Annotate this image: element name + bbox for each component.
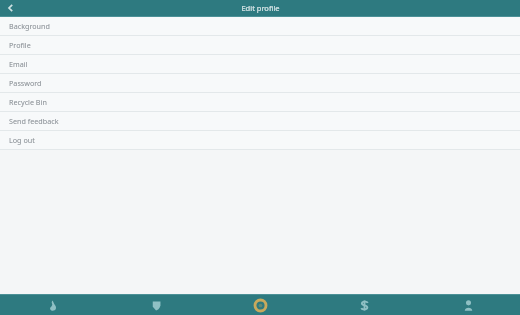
button[interactable]: Password	[0, 74, 520, 93]
staticText: Background	[9, 21, 50, 31]
button[interactable]: Log out	[0, 131, 520, 150]
staticText: Profile	[9, 40, 31, 50]
button[interactable]: Background	[0, 17, 520, 36]
button[interactable]: Send feedback	[0, 112, 520, 131]
button[interactable]: Back	[0, 0, 22, 16]
staticText: Recycle Bin	[9, 97, 47, 107]
staticText: Send feedback	[9, 116, 59, 126]
staticText: Edit profile	[241, 3, 280, 13]
button[interactable]: Profile	[416, 295, 520, 315]
staticText: Log out	[9, 135, 35, 145]
button[interactable]: Payments	[312, 295, 416, 315]
staticText: Password	[9, 78, 42, 88]
button[interactable]: Email	[0, 55, 520, 74]
staticText: Email	[9, 59, 28, 69]
button[interactable]: Profile	[0, 36, 520, 55]
button[interactable]: Tags	[104, 295, 208, 315]
button[interactable]: Home	[0, 295, 104, 315]
button[interactable]: Featured	[208, 295, 312, 315]
button[interactable]: Recycle Bin	[0, 93, 520, 112]
